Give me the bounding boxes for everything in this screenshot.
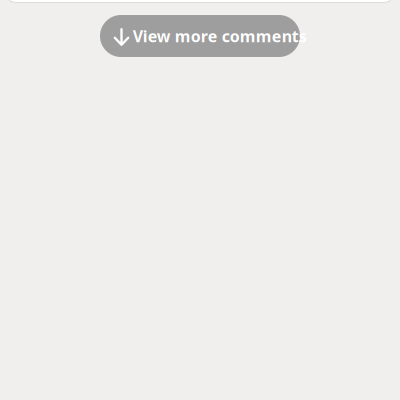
staticText: View more comments <box>133 25 307 47</box>
button[interactable]: View more comments <box>100 15 300 57</box>
